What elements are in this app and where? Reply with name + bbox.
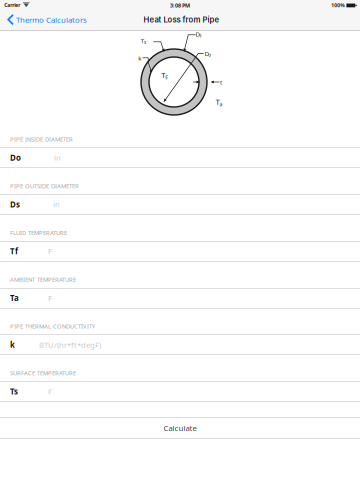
- staticText: T: [141, 37, 144, 45]
- staticText: PIPE THERMAL CONDUCTIVITY: [10, 322, 95, 330]
- staticText: D: [205, 49, 209, 58]
- staticText: Carrier: [4, 2, 20, 8]
- staticText: Tf: [10, 246, 18, 256]
- staticText: F: [165, 74, 168, 81]
- button[interactable]: Tf: [0, 241, 360, 261]
- staticText: AMBIENT TEMPERATURE: [10, 275, 76, 283]
- staticText: s: [199, 32, 201, 38]
- staticText: k: [138, 54, 141, 62]
- staticText: PIPE OUTSIDE DIAMETER: [10, 182, 79, 190]
- staticText: D: [196, 30, 200, 38]
- staticText: k: [10, 339, 15, 350]
- staticText: F: [48, 293, 52, 303]
- staticText: Ts: [10, 386, 18, 397]
- staticText: Do: [10, 152, 21, 163]
- button[interactable]: Do: [0, 148, 360, 167]
- staticText: Ds: [10, 199, 20, 210]
- staticText: PIPE INSIDE DIAMETER: [10, 135, 73, 143]
- button[interactable]: Ds: [0, 195, 360, 214]
- staticText: F: [48, 246, 52, 256]
- staticText: Ta: [10, 292, 19, 303]
- staticText: T: [162, 70, 166, 80]
- staticText: BTU/(hr*ft*degF): [39, 339, 101, 350]
- staticText: o: [208, 52, 211, 58]
- button[interactable]: k: [0, 335, 360, 354]
- staticText: F: [48, 386, 52, 397]
- staticText: Calculate: [163, 423, 196, 433]
- staticText: SURFACE TEMPERATURE: [10, 369, 76, 377]
- staticText: in: [54, 152, 61, 163]
- staticText: T: [216, 97, 220, 107]
- staticText: 3:08 PM: [170, 2, 190, 9]
- button[interactable]: Ta: [0, 288, 360, 308]
- staticText: Thermo Calculators: [16, 14, 87, 25]
- staticText: t: [220, 78, 222, 86]
- staticText: in: [53, 199, 60, 210]
- staticText: 100%: [331, 2, 344, 9]
- staticText: Heat Loss from Pipe: [143, 15, 219, 24]
- button[interactable]: Thermo Calculators: [7, 10, 89, 30]
- staticText: a: [219, 101, 222, 108]
- button[interactable]: Calculate: [0, 418, 360, 438]
- staticText: s: [144, 39, 146, 45]
- button[interactable]: Ts: [0, 382, 360, 401]
- staticText: FLUID TEMPERATURE: [10, 229, 67, 237]
